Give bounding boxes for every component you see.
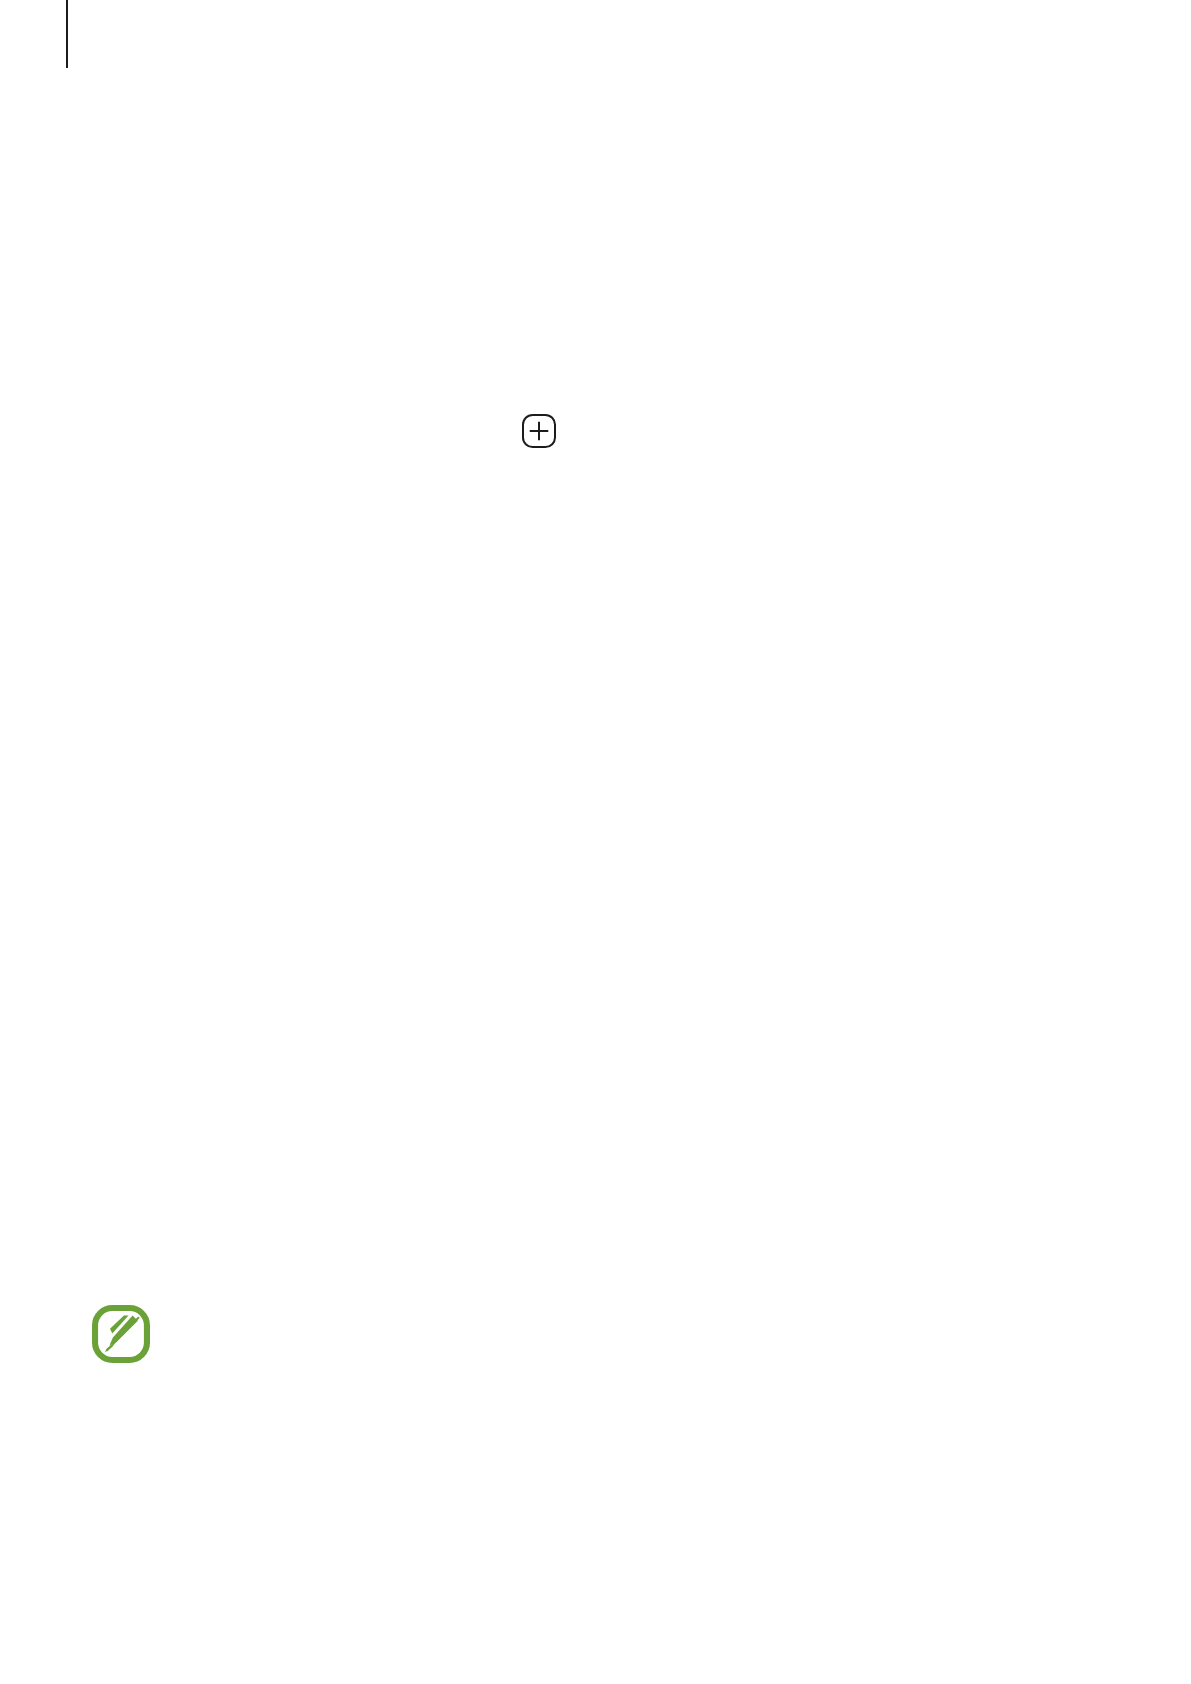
button[interactable]: Samsung Notes xyxy=(92,1305,150,1363)
button[interactable]: Add xyxy=(521,413,557,449)
